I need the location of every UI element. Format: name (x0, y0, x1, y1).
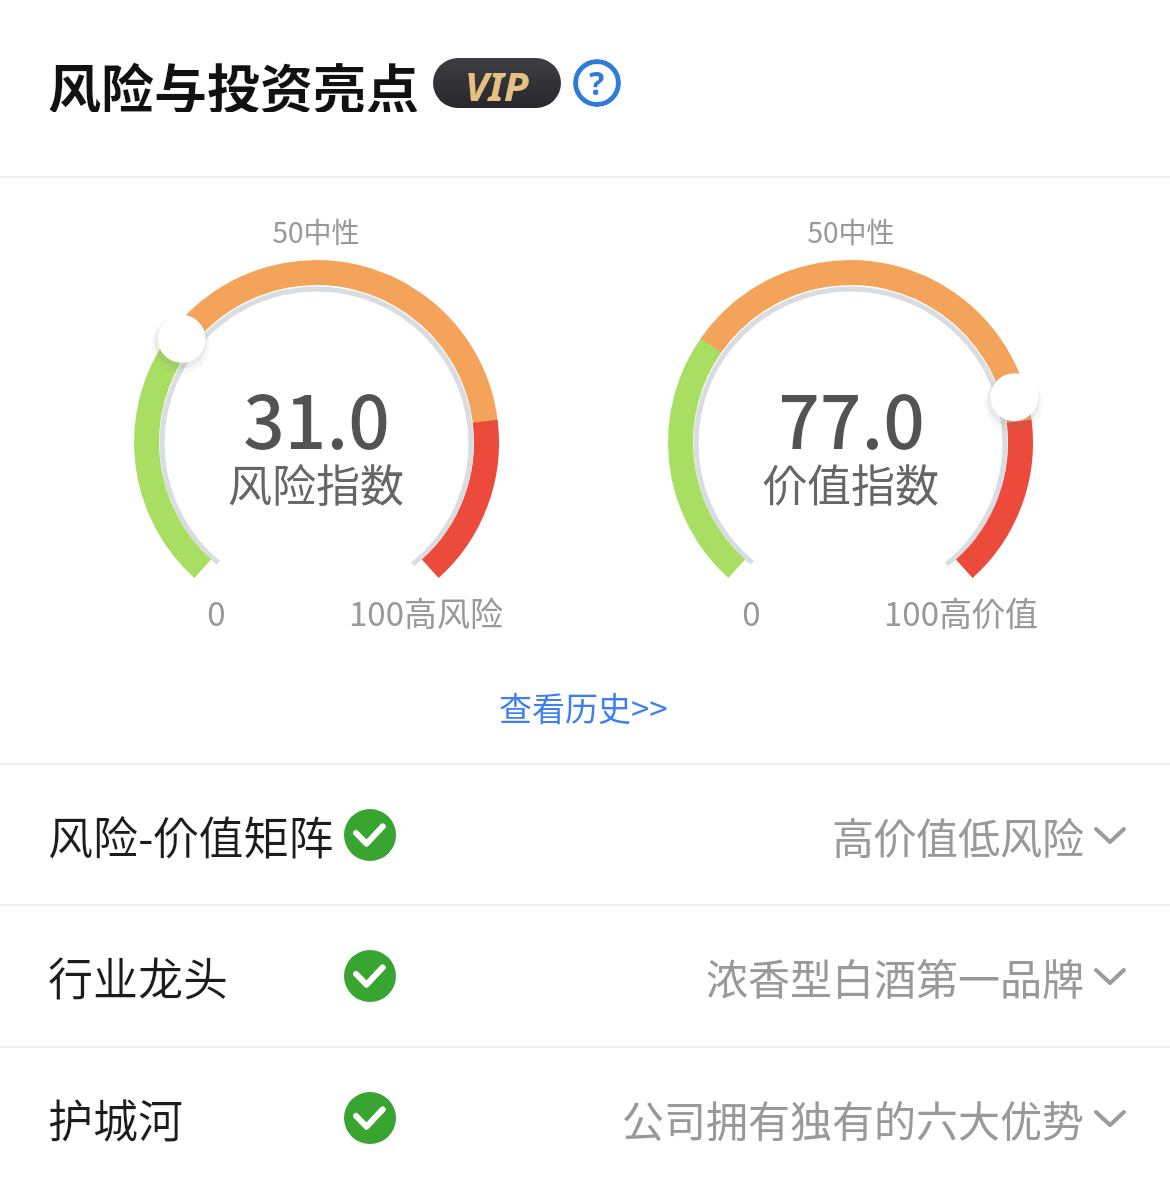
staticText: 100高风险 (349, 588, 503, 636)
staticText: 50中性 (807, 211, 895, 252)
button[interactable]: VIP (433, 58, 561, 108)
button[interactable]: 行业龙头 (0, 906, 1170, 1046)
staticText: 高价值低风险 (832, 805, 1085, 866)
staticText: 50中性 (272, 211, 360, 252)
staticText: 行业龙头 (48, 944, 229, 1009)
staticText: 77.0 (778, 364, 925, 470)
staticText: 查看历史>> (499, 683, 668, 731)
button[interactable]: 护城河 (0, 1048, 1170, 1184)
staticText: VIP (465, 58, 529, 108)
staticText: 0 (742, 588, 761, 636)
staticText: 公司拥有独有的六大优势 (622, 1088, 1085, 1149)
staticText: 31.0 (243, 364, 390, 470)
staticText: 价值指数 (763, 451, 939, 515)
staticText: 浓香型白酒第一品牌 (706, 946, 1085, 1007)
staticText: 风险与投资亮点 (48, 48, 419, 112)
staticText: 风险-价值矩阵 (48, 803, 334, 868)
staticText: 护城河 (48, 1086, 184, 1151)
staticText: 风险指数 (228, 451, 404, 515)
button[interactable]: ? (573, 59, 621, 107)
staticText: 0 (207, 588, 226, 636)
staticText: ? (589, 61, 605, 105)
button[interactable]: 查看历史>> (423, 667, 743, 747)
button[interactable]: 风险-价值矩阵 (0, 765, 1170, 905)
staticText: 100高价值 (884, 588, 1038, 636)
